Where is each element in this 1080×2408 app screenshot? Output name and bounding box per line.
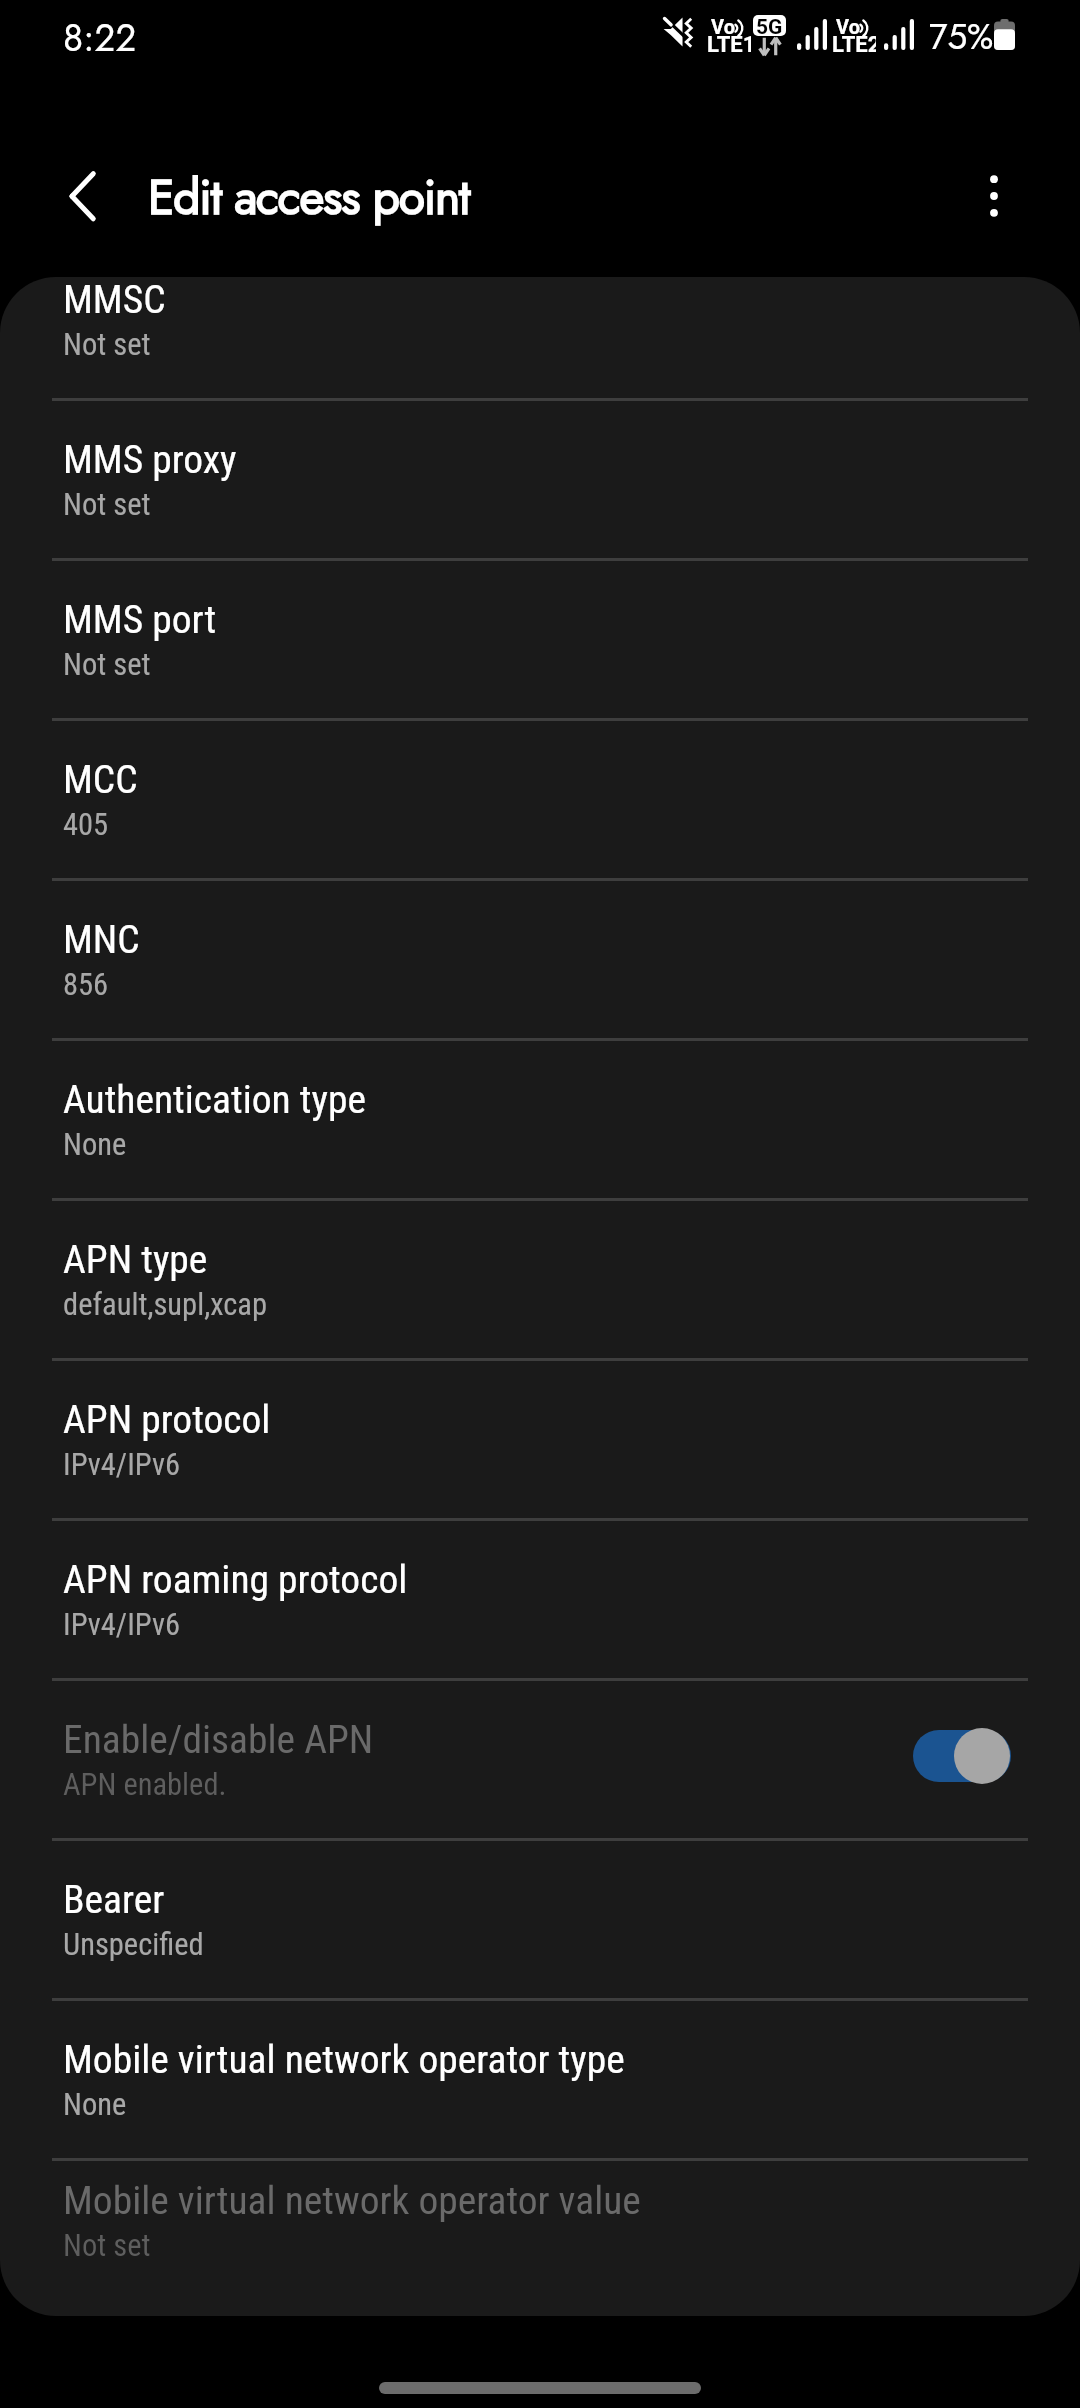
staticText: Edit access point bbox=[148, 163, 470, 232]
staticText: Not set bbox=[63, 327, 151, 363]
staticText: MNC bbox=[63, 916, 140, 962]
button[interactable]: APN type bbox=[0, 1201, 1080, 1358]
staticText: Vo bbox=[711, 15, 735, 38]
button[interactable]: Home bbox=[379, 2382, 701, 2394]
button[interactable]: MNC bbox=[0, 881, 1080, 1038]
staticText: IPv4/IPv6 bbox=[63, 1607, 181, 1643]
staticText: APN protocol bbox=[63, 1396, 271, 1442]
staticText: Authentication type bbox=[63, 1076, 366, 1122]
button[interactable]: Mobile virtual network operator type bbox=[0, 2001, 1080, 2158]
staticText: Enable/disable APN bbox=[63, 1716, 374, 1762]
staticText: MCC bbox=[63, 756, 138, 802]
staticText: Not set bbox=[63, 487, 151, 523]
staticText: 75% bbox=[929, 12, 994, 63]
staticText: Mobile virtual network operator type bbox=[63, 2036, 625, 2082]
staticText: None bbox=[63, 2087, 127, 2123]
staticText: Bearer bbox=[63, 1876, 165, 1922]
staticText: MMSC bbox=[63, 277, 166, 322]
staticText: IPv4/IPv6 bbox=[63, 1447, 181, 1483]
staticText: Not set bbox=[63, 2228, 151, 2264]
button[interactable]: Enable/disable APN bbox=[0, 1681, 1080, 1838]
staticText: default,supl,xcap bbox=[63, 1287, 267, 1323]
staticText: 5G bbox=[756, 15, 783, 36]
staticText: APN type bbox=[63, 1236, 208, 1282]
staticText: Mobile virtual network operator value bbox=[63, 2177, 641, 2223]
staticText: 405 bbox=[63, 807, 109, 843]
staticText: 8:22 bbox=[63, 11, 137, 64]
staticText: LTE2 bbox=[832, 32, 876, 58]
staticText: Vo bbox=[836, 15, 860, 38]
button[interactable]: Bearer bbox=[0, 1841, 1080, 1998]
button[interactable]: MMS port bbox=[0, 561, 1080, 718]
button[interactable]: MCC bbox=[0, 721, 1080, 878]
button[interactable]: APN roaming protocol bbox=[0, 1521, 1080, 1678]
button[interactable]: Mobile virtual network operator value bbox=[0, 2161, 1080, 2280]
staticText: MMS port bbox=[63, 596, 217, 642]
staticText: APN enabled. bbox=[63, 1767, 227, 1803]
staticText: LTE1 bbox=[707, 32, 751, 58]
staticText: Not set bbox=[63, 647, 151, 683]
button[interactable]: MMS proxy bbox=[0, 401, 1080, 558]
button[interactable]: APN protocol bbox=[0, 1361, 1080, 1518]
button[interactable]: Navigate up bbox=[50, 164, 114, 228]
button[interactable]: MMSC bbox=[0, 277, 1080, 398]
staticText: None bbox=[63, 1127, 127, 1163]
staticText: MMS proxy bbox=[63, 436, 237, 482]
button[interactable]: Authentication type bbox=[0, 1041, 1080, 1198]
staticText: Unspecified bbox=[63, 1927, 204, 1963]
button[interactable]: More options bbox=[962, 164, 1026, 228]
button[interactable]: Enable/disable APN bbox=[908, 1714, 1020, 1798]
staticText: 856 bbox=[63, 967, 109, 1003]
staticText: APN roaming protocol bbox=[63, 1556, 408, 1602]
